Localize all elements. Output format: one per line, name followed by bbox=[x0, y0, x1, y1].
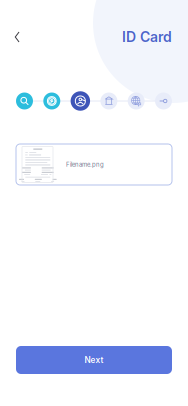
button[interactable]: Back bbox=[0, 22, 31, 52]
staticText: ID Card bbox=[122, 28, 172, 45]
staticText: Filename.png bbox=[66, 161, 104, 168]
staticText: Next bbox=[84, 355, 103, 365]
button[interactable]: Next bbox=[16, 346, 172, 374]
